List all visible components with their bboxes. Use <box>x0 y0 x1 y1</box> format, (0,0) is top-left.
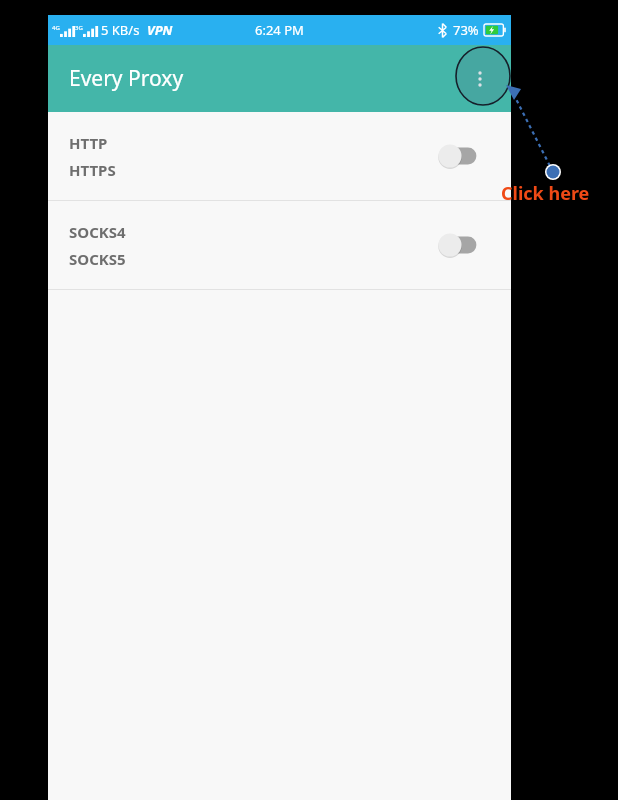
button[interactable]: HTTP <box>48 112 511 200</box>
staticText: 6:24 PM <box>255 21 304 39</box>
staticText: Click here <box>501 181 590 206</box>
button[interactable]: Toggle SOCKS4 <box>438 230 486 260</box>
staticText: 73% <box>453 21 479 39</box>
button[interactable]: Toggle HTTP <box>438 141 486 171</box>
staticText: SOCKS5 <box>69 249 126 269</box>
staticText: 4G <box>52 24 60 32</box>
staticText: HTTP <box>69 133 108 153</box>
staticText: Every Proxy <box>69 64 184 93</box>
staticText: 3G <box>75 24 83 32</box>
staticText: VPN <box>147 21 173 39</box>
button[interactable]: More options <box>456 55 504 103</box>
staticText: SOCKS4 <box>69 222 126 242</box>
button[interactable]: SOCKS4 <box>48 201 511 289</box>
staticText: 5 KB/s <box>101 21 140 39</box>
staticText: HTTPS <box>69 160 116 180</box>
